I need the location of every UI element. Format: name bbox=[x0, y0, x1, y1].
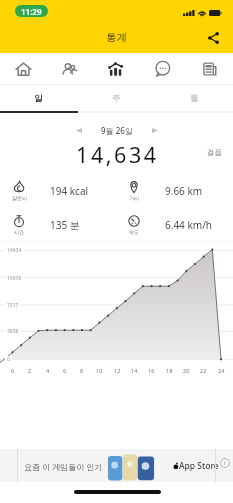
staticText: 9.66 km bbox=[165, 184, 203, 198]
button[interactable]: News bbox=[186, 53, 233, 84]
staticText: 6 bbox=[63, 367, 67, 374]
button[interactable]: Home bbox=[0, 53, 46, 84]
staticText: 14,634 bbox=[76, 140, 159, 166]
staticText: App Store bbox=[179, 460, 219, 472]
staticText: 10 bbox=[96, 367, 103, 374]
staticText: 걸음 bbox=[207, 148, 222, 157]
button[interactable]: 거리 bbox=[115, 174, 233, 208]
button[interactable]: 시간 bbox=[0, 208, 118, 242]
staticText: 6.44 km/h bbox=[165, 218, 213, 232]
staticText: 24 bbox=[218, 367, 225, 374]
button[interactable]: Previous day bbox=[68, 121, 89, 140]
staticText: 0 bbox=[7, 356, 10, 363]
staticText: 속도 bbox=[129, 229, 139, 235]
staticText: 12 bbox=[114, 367, 121, 374]
staticText: 4 bbox=[46, 367, 50, 374]
button[interactable]: 월 bbox=[155, 85, 233, 111]
staticText: 통계 bbox=[106, 31, 127, 44]
staticText: 8 bbox=[80, 367, 84, 374]
staticText: 칼로리 bbox=[12, 195, 27, 201]
staticText: 11:29 bbox=[21, 6, 42, 17]
staticText: 18 bbox=[166, 367, 173, 374]
button[interactable]: 주 bbox=[77, 85, 155, 111]
button[interactable]: 요즘 이 게임들이 인기 bbox=[0, 449, 233, 482]
button[interactable]: Chat bbox=[139, 53, 186, 84]
staticText: 20 bbox=[183, 367, 190, 374]
staticText: 일 bbox=[34, 93, 43, 104]
staticText: 9월 26일 bbox=[101, 125, 133, 136]
staticText: 194 kcal bbox=[50, 184, 89, 198]
staticText: 14 bbox=[131, 367, 138, 374]
staticText: 2 bbox=[28, 367, 32, 374]
staticText: 16 bbox=[148, 367, 155, 374]
staticText: 14634 bbox=[7, 247, 22, 254]
staticText: 0 bbox=[11, 367, 15, 374]
button[interactable]: Friends bbox=[46, 53, 92, 84]
staticText: 요즘 이 게임들이 인기 bbox=[24, 461, 103, 472]
staticText: i bbox=[224, 459, 226, 467]
staticText: 22 bbox=[200, 367, 207, 374]
staticText: 거리 bbox=[129, 195, 139, 201]
button[interactable]: Statistics bbox=[92, 53, 139, 84]
button[interactable]: 속도 bbox=[115, 208, 233, 242]
button[interactable]: Share bbox=[202, 22, 224, 53]
staticText: 시간 bbox=[14, 229, 24, 235]
button[interactable]: Ad info bbox=[220, 458, 230, 468]
button[interactable]: 칼로리 bbox=[0, 174, 118, 208]
staticText: 주 bbox=[112, 93, 121, 104]
staticText: 10976 bbox=[7, 275, 22, 282]
staticText: 135 분 bbox=[50, 218, 80, 232]
button[interactable]: 일 bbox=[0, 85, 77, 111]
staticText: 월 bbox=[190, 93, 199, 104]
button[interactable]: Next day bbox=[144, 121, 165, 140]
staticText: 7317 bbox=[7, 302, 19, 309]
staticText: 3658 bbox=[7, 328, 19, 335]
